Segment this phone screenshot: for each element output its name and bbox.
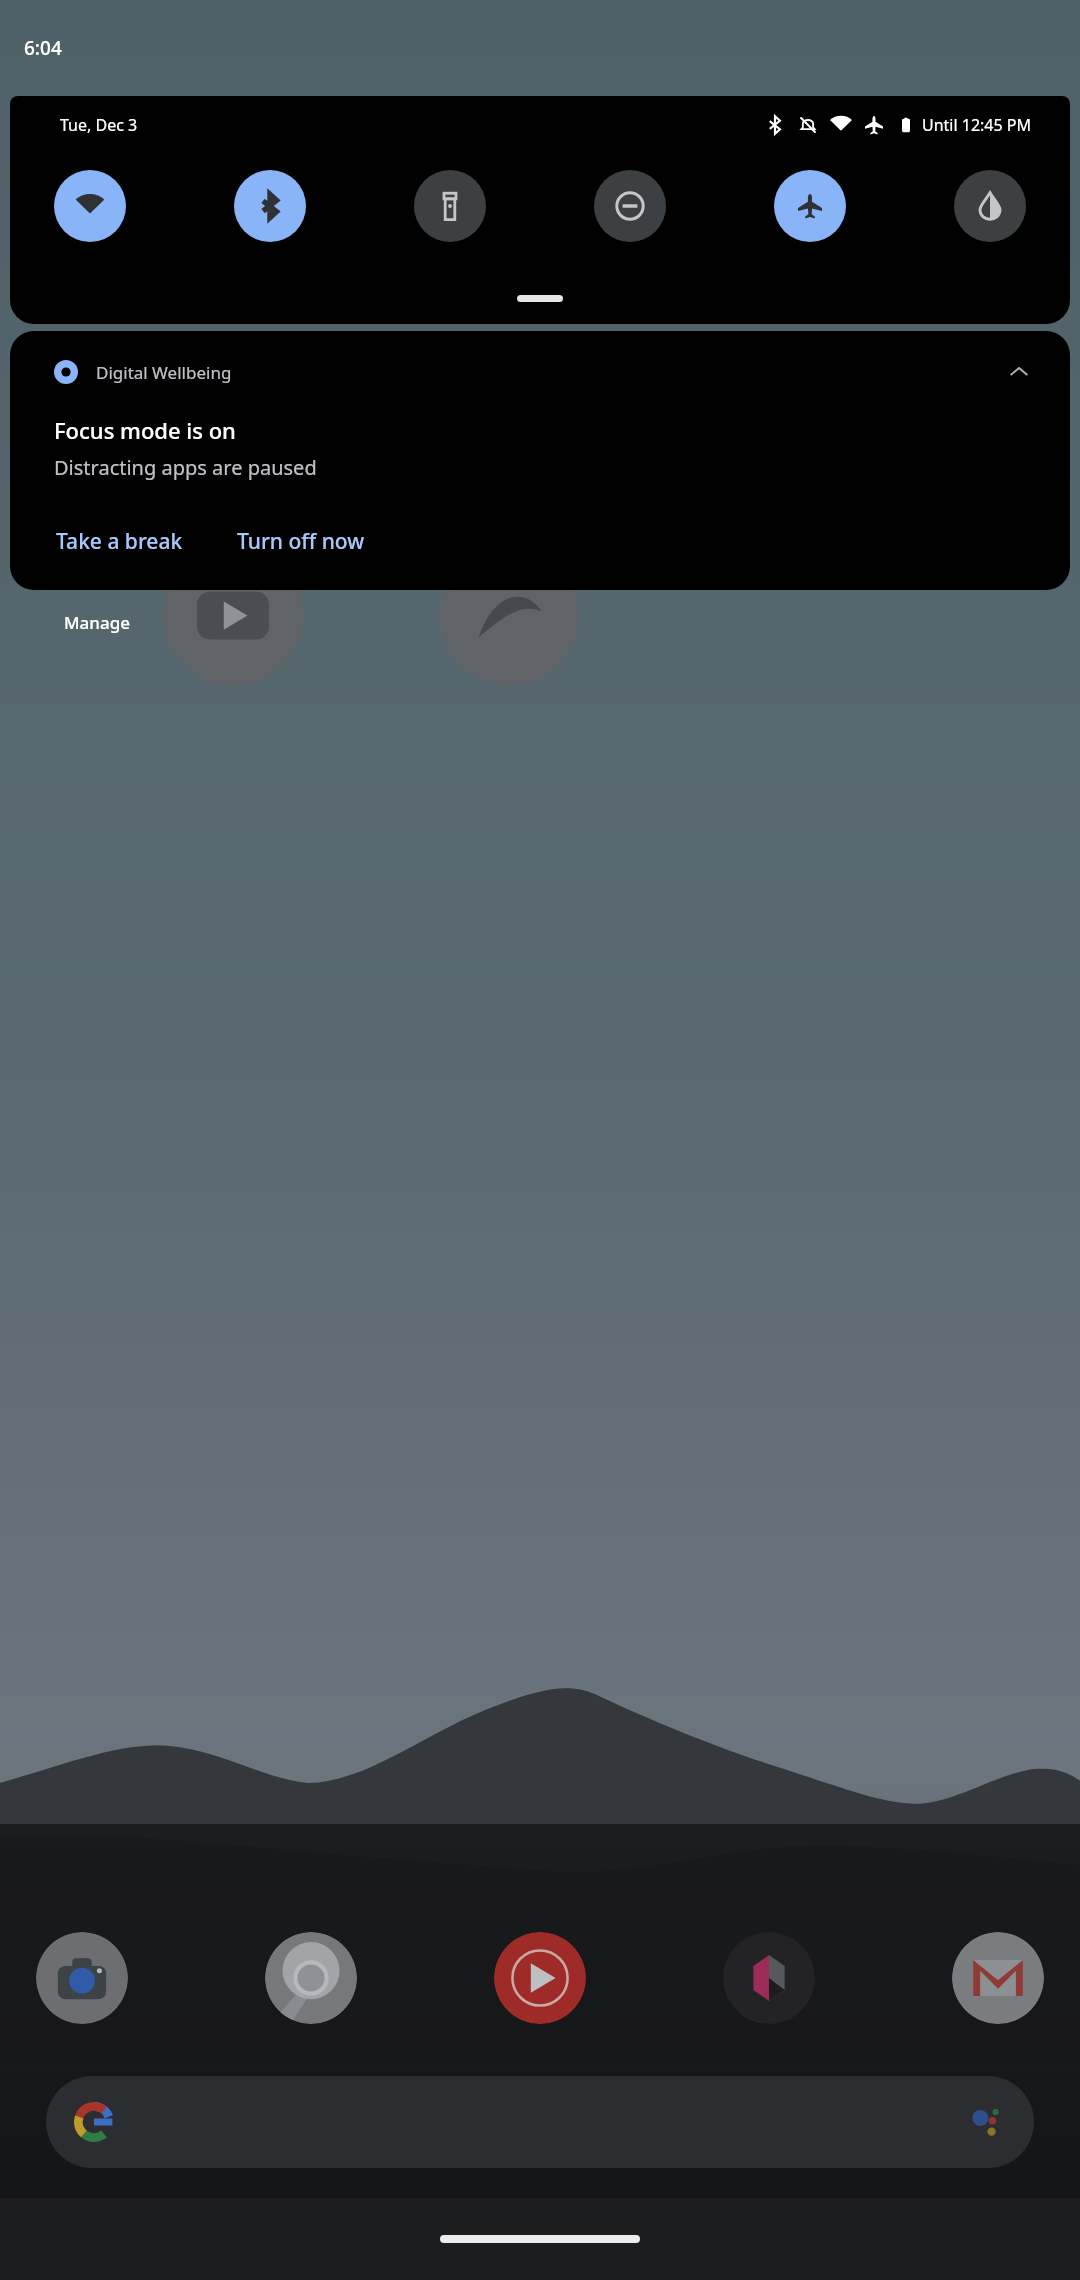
button[interactable]: Camera: [36, 1932, 128, 2024]
button[interactable]: Do Not Disturb: [594, 170, 666, 242]
other: Wi-Fi: [830, 114, 852, 136]
button[interactable]: Take a break: [54, 521, 185, 562]
button[interactable]: Bluetooth: [234, 170, 306, 242]
staticText: Distracting apps are paused: [54, 454, 317, 481]
button[interactable]: Home: [440, 2235, 640, 2243]
staticText: Turn off now: [237, 527, 365, 556]
button[interactable]: Gmail: [952, 1932, 1044, 2024]
staticText: Digital Wellbeing: [96, 361, 232, 384]
button[interactable]: Search: [46, 2076, 1034, 2168]
button[interactable]: Turn off now: [235, 521, 367, 562]
staticText: Take a break: [56, 527, 183, 556]
button[interactable]: Digital Wellbeing: [10, 331, 1070, 590]
other: Battery: [896, 115, 916, 135]
staticText: 6:04: [24, 35, 62, 61]
button[interactable]: Collapse notification: [1002, 355, 1036, 389]
button[interactable]: Wi-Fi: [54, 170, 126, 242]
button[interactable]: Chrome: [265, 1932, 357, 2024]
button[interactable]: Play Store: [494, 1932, 586, 2024]
other: Bluetooth: [764, 114, 786, 136]
button[interactable]: Manage: [60, 607, 135, 638]
button[interactable]: Airplane mode: [774, 170, 846, 242]
other: Ringer muted: [797, 114, 819, 136]
button[interactable]: Photos: [723, 1932, 815, 2024]
staticText: Tue, Dec 3: [60, 114, 138, 136]
other: Airplane mode: [863, 114, 885, 136]
button[interactable]: Night Light: [954, 170, 1026, 242]
button[interactable]: Expand quick settings: [517, 295, 563, 302]
staticText: Manage: [64, 611, 131, 634]
staticText: Until 12:45 PM: [922, 114, 1032, 136]
staticText: Focus mode is on: [54, 415, 236, 445]
button[interactable]: Flashlight: [414, 170, 486, 242]
